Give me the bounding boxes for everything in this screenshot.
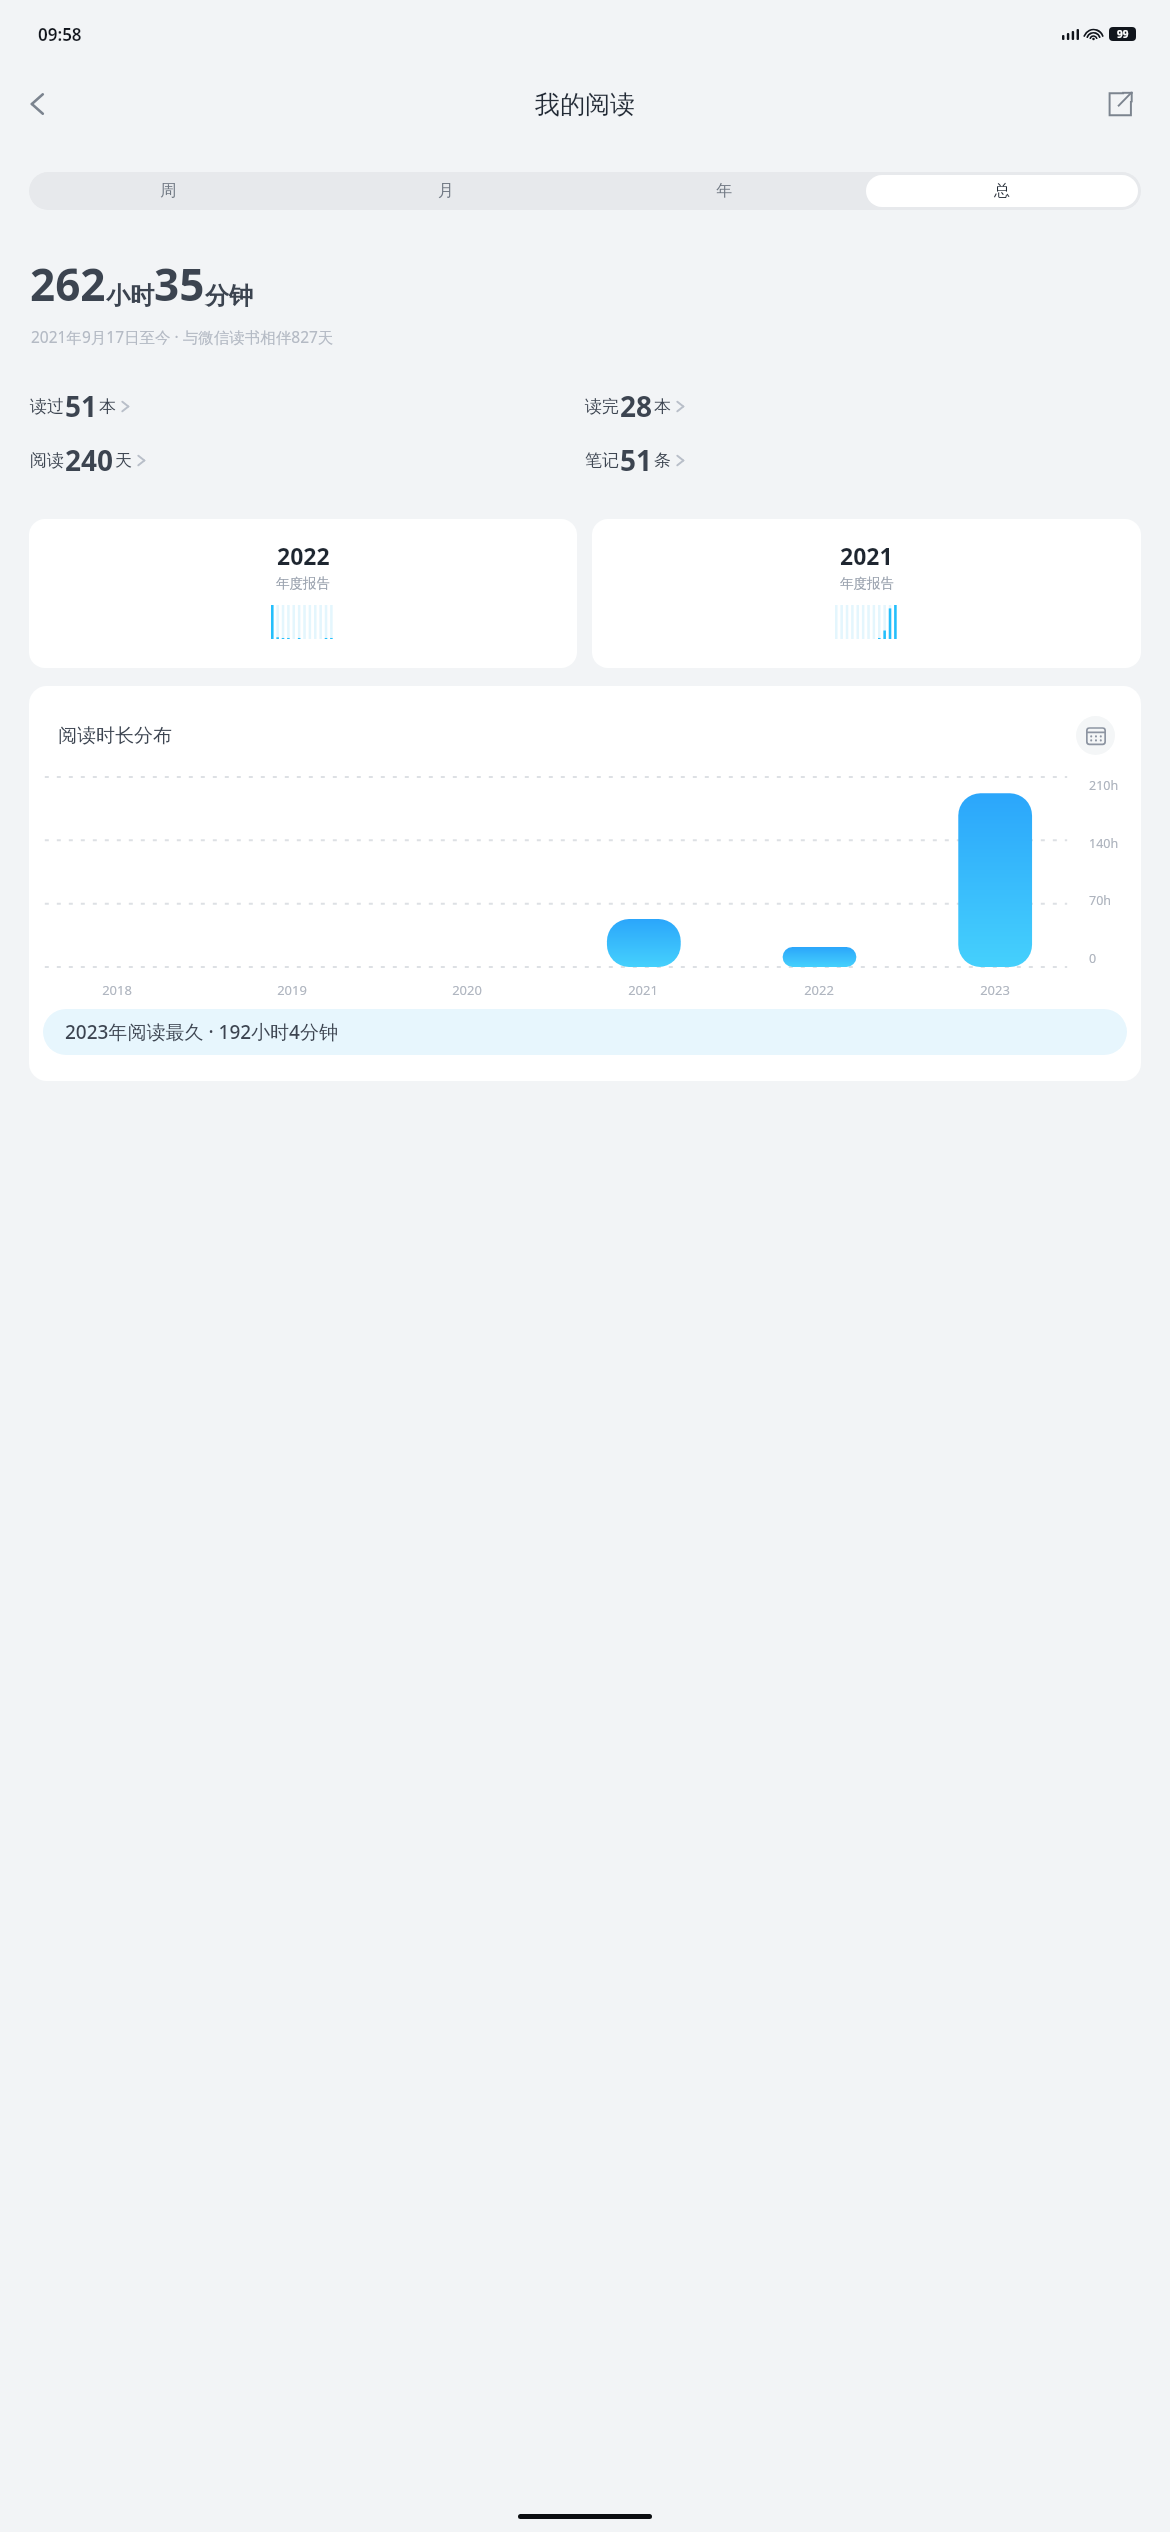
staticText: 本 [654, 396, 671, 417]
staticText: 35 [154, 254, 205, 314]
staticText: 总 [994, 181, 1010, 201]
staticText: 分钟 [205, 281, 253, 311]
button[interactable]: 2022 [29, 519, 577, 668]
staticText: 09:58 [38, 23, 82, 46]
staticText: 210h [1089, 777, 1119, 794]
staticText: 28 [620, 387, 653, 425]
staticText: 99 [1117, 27, 1129, 41]
button[interactable]: Back [10, 76, 66, 132]
staticText: 51 [620, 441, 653, 479]
button[interactable]: 读完 [585, 387, 1140, 425]
staticText: 2023年阅读最久 · 192小时4分钟 [65, 1019, 338, 1045]
staticText: 读完 [585, 396, 619, 417]
staticText: 0 [1089, 950, 1097, 967]
staticText: 2021 [840, 540, 893, 571]
button[interactable]: 2023年阅读最久 · 192小时4分钟 [43, 1009, 1127, 1055]
staticText: 年度报告 [840, 575, 894, 592]
staticText: 笔记 [585, 450, 619, 471]
staticText: 本 [99, 396, 116, 417]
staticText: 小时 [106, 281, 154, 311]
staticText: 月 [438, 181, 454, 201]
staticText: 140h [1089, 835, 1119, 852]
staticText: 2019 [277, 981, 307, 999]
staticText: 2023 [980, 981, 1010, 999]
button[interactable]: 总 [866, 175, 1138, 207]
staticText: 2021 [628, 981, 658, 999]
button[interactable]: 周 [32, 175, 304, 207]
staticText: 阅读时长分布 [58, 724, 172, 748]
staticText: 阅读 [30, 450, 64, 471]
staticText: 年度报告 [276, 575, 330, 592]
staticText: 条 [654, 450, 671, 471]
staticText: 年 [716, 181, 732, 201]
staticText: 2022 [277, 540, 330, 571]
staticText: 周 [160, 181, 176, 201]
button[interactable]: 读过 [30, 387, 585, 425]
staticText: 读过 [30, 396, 64, 417]
button[interactable]: Calendar [1076, 716, 1115, 755]
button[interactable]: Share [1092, 76, 1148, 132]
button[interactable]: 阅读 [30, 441, 585, 479]
staticText: 70h [1089, 892, 1112, 909]
staticText: 51 [65, 387, 98, 425]
button[interactable]: 月 [310, 175, 582, 207]
staticText: 我的阅读 [535, 89, 635, 120]
button[interactable]: 笔记 [585, 441, 1140, 479]
staticText: 2020 [452, 981, 482, 999]
button[interactable]: 2021 [592, 519, 1141, 668]
button[interactable]: 年 [588, 175, 860, 207]
staticText: 240 [65, 441, 114, 479]
staticText: 2021年9月17日至今 · 与微信读书相伴827天 [31, 326, 334, 347]
staticText: 2018 [102, 981, 132, 999]
staticText: 2022 [804, 981, 834, 999]
staticText: 天 [115, 450, 132, 471]
staticText: 262 [30, 254, 106, 314]
